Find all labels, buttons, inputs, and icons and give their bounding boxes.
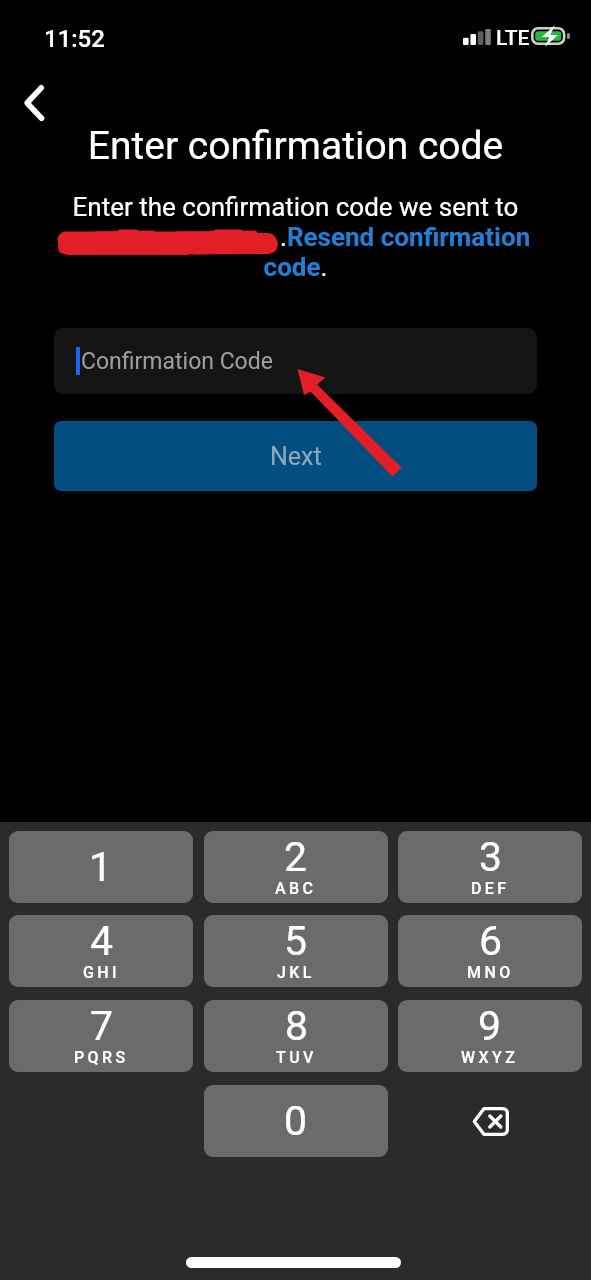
staticText: ABC — [275, 879, 317, 898]
button[interactable]: 2 — [204, 831, 388, 903]
staticText: 5 — [284, 917, 308, 965]
staticText: JKL — [277, 963, 315, 982]
button[interactable]: Backspace — [398, 1085, 582, 1157]
button[interactable]: Back — [7, 78, 59, 130]
staticText: TUV — [276, 1048, 317, 1067]
button[interactable]: 9 — [398, 1000, 582, 1072]
button[interactable]: 1 — [9, 831, 193, 903]
staticText: 2 — [284, 833, 308, 881]
staticText: PQRS — [74, 1048, 129, 1067]
staticText: Next — [270, 442, 322, 471]
staticText: DEF — [471, 879, 510, 898]
staticText: 6 — [479, 917, 503, 965]
staticText: MNO — [467, 963, 514, 982]
button[interactable]: 4 — [9, 915, 193, 987]
button[interactable]: Next — [54, 421, 537, 491]
button[interactable]: 8 — [204, 1000, 388, 1072]
button[interactable]: 0 — [204, 1085, 388, 1157]
button[interactable]: 5 — [204, 915, 388, 987]
staticText: 7 — [90, 1002, 114, 1050]
staticText: 4 — [90, 917, 114, 965]
button[interactable]: Confirmation Code — [54, 328, 537, 394]
button[interactable]: 7 — [9, 1000, 193, 1072]
staticText: 0 — [284, 1097, 308, 1145]
staticText: 3 — [479, 833, 503, 881]
button[interactable]: 6 — [398, 915, 582, 987]
staticText: 8 — [285, 1002, 309, 1050]
staticText: 1 — [89, 843, 113, 891]
staticText: GHI — [83, 963, 120, 982]
staticText: Enter the confirmation code we sent to x… — [55, 192, 536, 282]
staticText: 11:52 — [44, 25, 105, 53]
staticText: LTE — [496, 26, 530, 51]
staticText: Enter confirmation code — [0, 123, 591, 169]
staticText: Confirmation Code — [81, 348, 273, 375]
button[interactable]: 3 — [398, 831, 582, 903]
staticText: 9 — [478, 1002, 502, 1050]
staticText: WXYZ — [461, 1048, 519, 1067]
